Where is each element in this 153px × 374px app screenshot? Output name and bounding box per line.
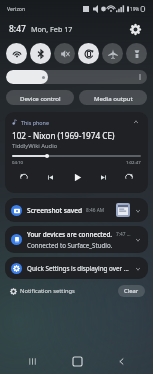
staticText: Connected to Surface_Studio. (27, 241, 113, 249)
staticText: Media output (94, 94, 133, 102)
button[interactable]: Collapse (131, 117, 141, 127)
staticText: This phone (21, 119, 49, 126)
button[interactable]: Notification settings (8, 286, 77, 296)
button[interactable]: Wi-Fi (6, 43, 27, 64)
staticText: TiddlyWiki Audio (12, 142, 58, 150)
button[interactable]: Expand (133, 206, 142, 215)
button[interactable]: Flashlight (126, 43, 147, 64)
staticText: 1:02:47 (126, 159, 141, 165)
button[interactable]: Device control (6, 90, 74, 105)
button[interactable]: Airplane mode (102, 43, 123, 64)
staticText: Your devices are connected. (27, 230, 113, 239)
staticText: 7:47 AM (116, 231, 133, 238)
staticText: 8:47 (9, 23, 26, 35)
button[interactable]: Play (68, 168, 86, 186)
staticText: 8:46 AM (86, 207, 105, 214)
staticText: Mon, Feb 17 (31, 24, 73, 34)
staticText: Clear (124, 287, 139, 295)
button[interactable]: Media output (79, 90, 147, 105)
staticText: Screenshot saved (27, 206, 83, 215)
button[interactable]: Expand (133, 264, 142, 273)
staticText: Quick Settings is displaying over ot... (27, 264, 131, 273)
button[interactable]: Home (64, 348, 90, 374)
button[interactable]: Expand (133, 235, 142, 244)
staticText: Device control (20, 94, 61, 102)
button[interactable]: Clear (118, 285, 145, 297)
button[interactable]: Previous (42, 169, 58, 185)
staticText: 19% (130, 6, 140, 12)
button[interactable]: Bluetooth (30, 43, 51, 64)
button[interactable]: Back (108, 348, 134, 374)
button[interactable]: Your devices are connected. (5, 226, 148, 253)
button[interactable]: Next (95, 169, 111, 185)
button[interactable]: Screenshot saved (5, 198, 148, 222)
button[interactable] (6, 70, 147, 84)
button[interactable]: Settings (126, 20, 144, 38)
button[interactable]: Forward 10 seconds (121, 169, 137, 185)
staticText: 04:10 (12, 159, 23, 165)
button[interactable]: Recents (19, 348, 45, 374)
button[interactable]: Sound off (54, 43, 75, 64)
staticText: Notification settings (20, 287, 75, 295)
staticText: 102 - Nixon (1969-1974 CE) (12, 130, 115, 141)
button[interactable]: Auto rotate (78, 43, 99, 64)
button[interactable]: Rewind 10 seconds (16, 169, 32, 185)
staticText: Verizon (7, 5, 26, 12)
button[interactable]: This phone (5, 112, 148, 193)
button[interactable]: Quick Settings is displaying over ot... (5, 257, 148, 279)
